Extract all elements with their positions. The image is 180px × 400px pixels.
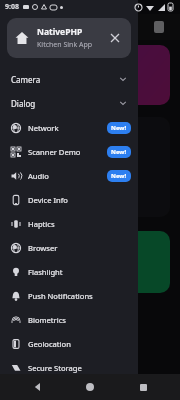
button[interactable]: Geolocation [0,332,138,356]
staticText: 9:08 [5,2,19,12]
button[interactable]: Back [23,374,53,400]
button[interactable]: Biometrics [0,308,138,332]
staticText: Biometrics [28,315,66,325]
staticText: New! [111,124,127,132]
button[interactable]: Secure Storage [0,356,138,380]
staticText: Dialog [11,98,36,109]
button[interactable]: Browser [0,236,138,260]
button[interactable]: NativePHP [7,18,131,58]
button[interactable]: Home [75,374,105,400]
button[interactable]: Recent apps [128,374,158,400]
button[interactable]: Push Notifications [0,284,138,308]
staticText: Camera [11,74,41,85]
staticText: Device Info [28,195,68,205]
button[interactable]: Scanner Demo [0,140,138,164]
staticText: Haptics [28,219,55,229]
staticText: Flashlight [28,267,63,277]
button[interactable]: Device Info [0,188,138,212]
button[interactable]: Camera [0,67,138,91]
staticText: Audio [28,171,49,181]
button[interactable]: Haptics [0,212,138,236]
button[interactable]: Audio [0,164,138,188]
staticText: Geolocation [28,339,71,349]
staticText: Scanner Demo [28,147,81,157]
staticText: Push Notifications [28,291,93,301]
button[interactable]: Flashlight [0,260,138,284]
staticText: New! [111,172,127,180]
staticText: New! [111,148,127,156]
staticText: Secure Storage [28,363,82,373]
staticText: NativePHP [37,26,83,38]
button[interactable]: Dialog [0,91,138,115]
button[interactable]: Network [0,116,138,140]
staticText: Network [28,123,59,133]
button[interactable]: Close drawer [107,30,123,46]
staticText: Browser [28,243,58,253]
staticText: Kitchen Sink App [37,40,93,50]
